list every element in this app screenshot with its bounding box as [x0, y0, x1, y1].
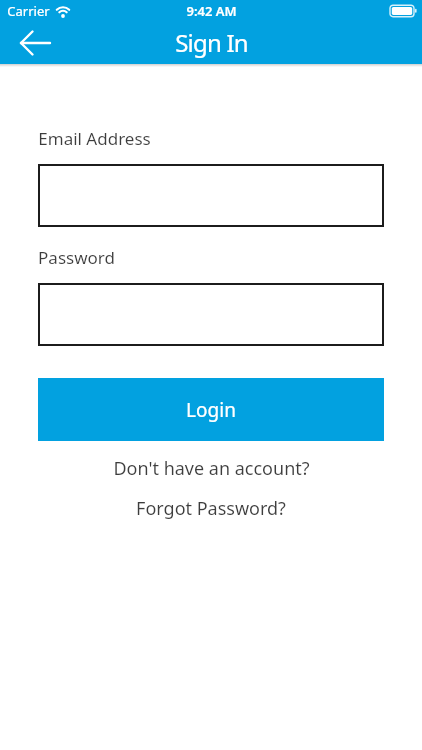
- button[interactable]: Forgot Password?: [38, 496, 384, 521]
- staticText: Forgot Password?: [136, 496, 286, 521]
- staticText: Sign In: [175, 26, 248, 59]
- button[interactable]: [10, 29, 60, 57]
- button[interactable]: [38, 164, 384, 227]
- staticText: Login: [186, 397, 236, 423]
- button[interactable]: Don't have an account?: [38, 456, 384, 481]
- button[interactable]: Login: [38, 378, 384, 441]
- staticText: Don't have an account?: [113, 456, 310, 481]
- staticText: Carrier: [7, 2, 50, 20]
- staticText: 9:42 AM: [186, 2, 237, 20]
- staticText: Password: [38, 246, 115, 269]
- staticText: Email Address: [38, 127, 151, 150]
- button[interactable]: [38, 283, 384, 346]
